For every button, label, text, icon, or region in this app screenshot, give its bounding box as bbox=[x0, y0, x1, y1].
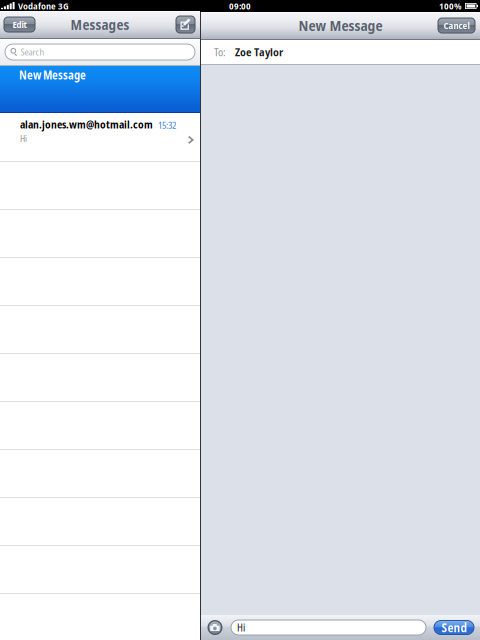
button[interactable]: Compose bbox=[176, 16, 195, 33]
staticText: Send bbox=[441, 619, 466, 636]
staticText: New Message bbox=[298, 16, 382, 35]
staticText: Search bbox=[20, 46, 44, 58]
staticText: Hi bbox=[20, 132, 27, 144]
staticText: New Message bbox=[19, 67, 86, 83]
button[interactable]: alan.jones.wm@hotmail.com bbox=[0, 113, 200, 161]
staticText: Hi bbox=[237, 621, 245, 634]
staticText: 09:00 bbox=[229, 0, 251, 12]
button[interactable]: Camera bbox=[207, 619, 223, 635]
button[interactable]: New Message bbox=[0, 66, 200, 113]
staticText: Cancel bbox=[443, 19, 469, 32]
button[interactable]: To: bbox=[201, 40, 480, 64]
staticText: 15:32 bbox=[158, 119, 176, 131]
button[interactable]: Send bbox=[434, 620, 474, 634]
staticText: Edit bbox=[12, 18, 26, 31]
staticText: Messages bbox=[70, 15, 129, 34]
staticText: 100% bbox=[439, 0, 462, 12]
button[interactable]: Cancel bbox=[438, 18, 475, 33]
staticText: To: bbox=[214, 45, 226, 59]
staticText: alan.jones.wm@hotmail.com bbox=[20, 117, 153, 131]
staticText: Vodafone 3G bbox=[18, 0, 69, 12]
staticText: Zoe Taylor bbox=[235, 44, 283, 60]
button[interactable]: Edit bbox=[4, 17, 35, 32]
